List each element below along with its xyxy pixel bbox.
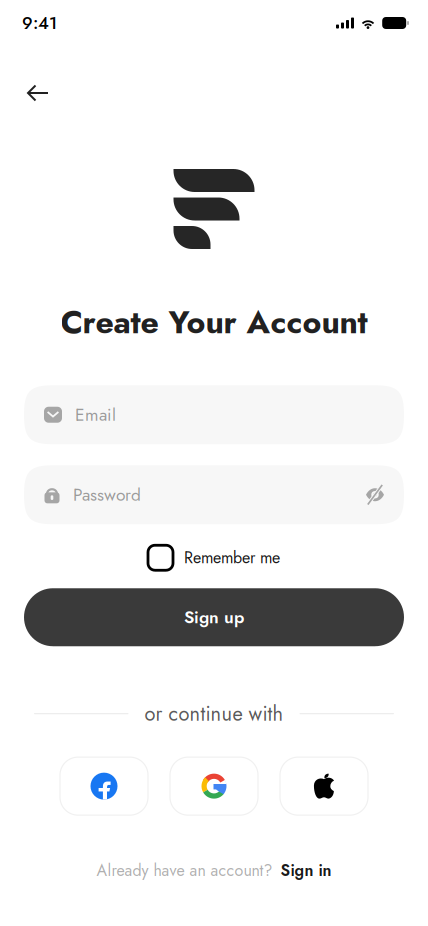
- button[interactable]: Sign in: [280, 859, 331, 882]
- staticText: 9:41: [22, 10, 57, 35]
- button[interactable]: Show password: [362, 484, 388, 506]
- button[interactable]: Continue with Google: [170, 757, 258, 815]
- button[interactable]: Back: [0, 71, 64, 115]
- button[interactable]: Sign up: [24, 588, 404, 646]
- staticText: Sign up: [184, 605, 244, 630]
- staticText: Already have an account?: [96, 859, 272, 882]
- staticText: Create Your Account: [60, 299, 367, 345]
- staticText: Remember me: [184, 546, 280, 569]
- staticText: or continue with: [144, 699, 283, 728]
- staticText: Email: [75, 402, 116, 427]
- button[interactable]: Continue with Apple: [280, 757, 368, 815]
- button[interactable]: Remember me: [148, 541, 280, 574]
- button[interactable]: Continue with Facebook: [60, 757, 148, 815]
- staticText: Password: [73, 482, 141, 507]
- staticText: Sign in: [280, 859, 331, 882]
